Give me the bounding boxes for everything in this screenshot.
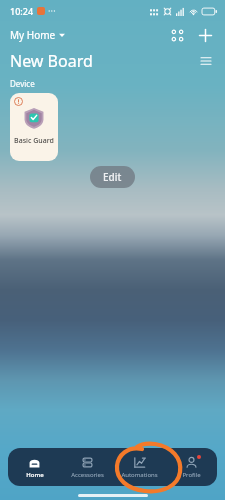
staticText: Edit [103,170,122,184]
button[interactable]: Automations [113,453,165,482]
button[interactable]: Add [193,23,217,47]
staticText: Basic Guard [14,136,54,146]
staticText: Home [26,471,44,479]
button[interactable]: Accessories [61,453,113,482]
button[interactable]: My Home [8,26,67,44]
button[interactable]: Home [8,453,61,482]
button[interactable]: Rooms grid [165,23,189,47]
staticText: My Home [10,28,56,42]
button[interactable]: Basic Guard [10,93,58,161]
staticText: 10:24 [10,5,34,17]
button[interactable]: Menu [195,50,217,72]
staticText: Accessories [71,471,104,479]
staticText: New Board [10,50,93,72]
button[interactable]: Edit [90,166,135,188]
staticText: Automations [121,471,158,479]
staticText: Device [10,78,35,89]
button[interactable]: Profile [165,453,217,482]
staticText: Profile [182,471,201,479]
